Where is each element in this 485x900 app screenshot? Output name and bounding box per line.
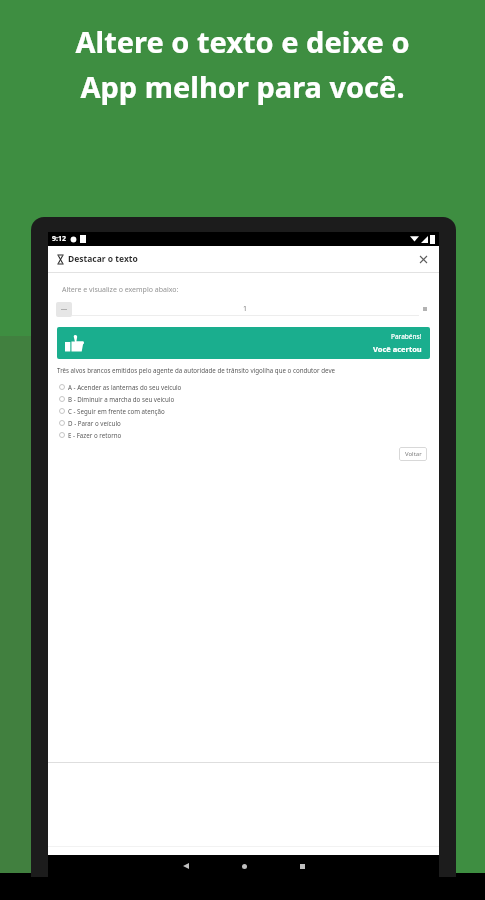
button[interactable]: Início [226,855,262,877]
button[interactable]: Aumentar [419,303,431,315]
staticText: Altere o texto e deixe o [75,22,410,61]
button[interactable]: Parabéns! [57,327,430,359]
staticText: Altere e visualize o exemplo abaixo: [62,285,179,295]
staticText: Parabéns! [391,332,422,341]
button[interactable]: Recentes [284,855,320,877]
staticText: B - Diminuir a marcha do seu veículo [68,395,175,403]
staticText: C - Seguir em frente com atenção [68,407,165,415]
staticText: E - Fazer o retorno [68,431,122,439]
staticText: Voltar [405,450,422,458]
button[interactable]: A - Acender as lanternas do seu veículo [48,381,439,393]
button[interactable]: Voltar [399,447,427,461]
button[interactable]: D - Parar o veículo [48,417,439,429]
staticText: Três alvos brancos emitidos pelo agente … [57,366,336,374]
staticText: 1 [243,304,248,314]
button[interactable]: C - Seguir em frente com atenção [48,405,439,417]
button[interactable]: Fechar [415,251,431,267]
staticText: Destacar o texto [68,253,138,265]
staticText: D - Parar o veículo [68,419,121,427]
staticText: Você acertou [373,344,422,354]
staticText: App melhor para você. [80,67,405,106]
button[interactable]: Voltar [168,855,204,877]
button[interactable]: Diminuir [56,302,72,317]
button[interactable]: Destacar o texto [48,246,439,272]
button[interactable]: B - Diminuir a marcha do seu veículo [48,393,439,405]
staticText: 9:12 [52,234,66,244]
button[interactable]: E - Fazer o retorno [48,429,439,441]
staticText: A - Acender as lanternas do seu veículo [68,383,182,391]
